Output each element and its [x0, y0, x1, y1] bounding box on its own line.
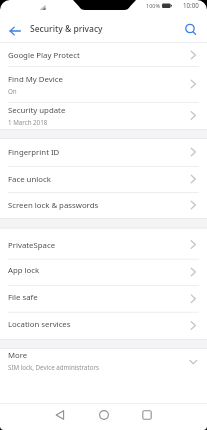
button[interactable]: [6, 21, 26, 41]
staticText: 10:00: [183, 1, 199, 9]
button[interactable]: File safe: [0, 284, 207, 311]
staticText: Find My Device: [8, 74, 63, 85]
button[interactable]: Google Play Protect: [0, 43, 207, 67]
button[interactable]: More: [0, 346, 207, 374]
staticText: Google Play Protect: [8, 50, 80, 61]
button[interactable]: [134, 404, 160, 430]
staticText: SIM lock, Device administrators: [8, 363, 99, 371]
staticText: Face unlock: [8, 174, 51, 185]
button[interactable]: Find My Device: [0, 67, 207, 102]
staticText: On: [8, 87, 17, 95]
staticText: Security & privacy: [30, 23, 103, 35]
button[interactable]: Screen lock & passwords: [0, 192, 207, 218]
staticText: PrivateSpace: [8, 240, 56, 251]
staticText: App lock: [8, 265, 40, 276]
button[interactable]: [180, 18, 200, 38]
button[interactable]: [91, 404, 117, 430]
button[interactable]: PrivateSpace: [0, 230, 207, 260]
button[interactable]: App lock: [0, 257, 207, 284]
button[interactable]: Location services: [0, 311, 207, 338]
button[interactable]: Fingerprint ID: [0, 139, 207, 166]
button[interactable]: [47, 404, 73, 430]
staticText: Security update: [8, 105, 66, 116]
staticText: More: [8, 350, 28, 361]
staticText: File safe: [8, 292, 38, 303]
staticText: 1 March 2018: [8, 118, 48, 126]
button[interactable]: Face unlock: [0, 166, 207, 192]
staticText: 100%: [146, 2, 161, 9]
staticText: Fingerprint ID: [8, 147, 60, 158]
button[interactable]: Security update: [0, 102, 207, 129]
staticText: Location services: [8, 319, 71, 330]
staticText: Screen lock & passwords: [8, 200, 99, 211]
